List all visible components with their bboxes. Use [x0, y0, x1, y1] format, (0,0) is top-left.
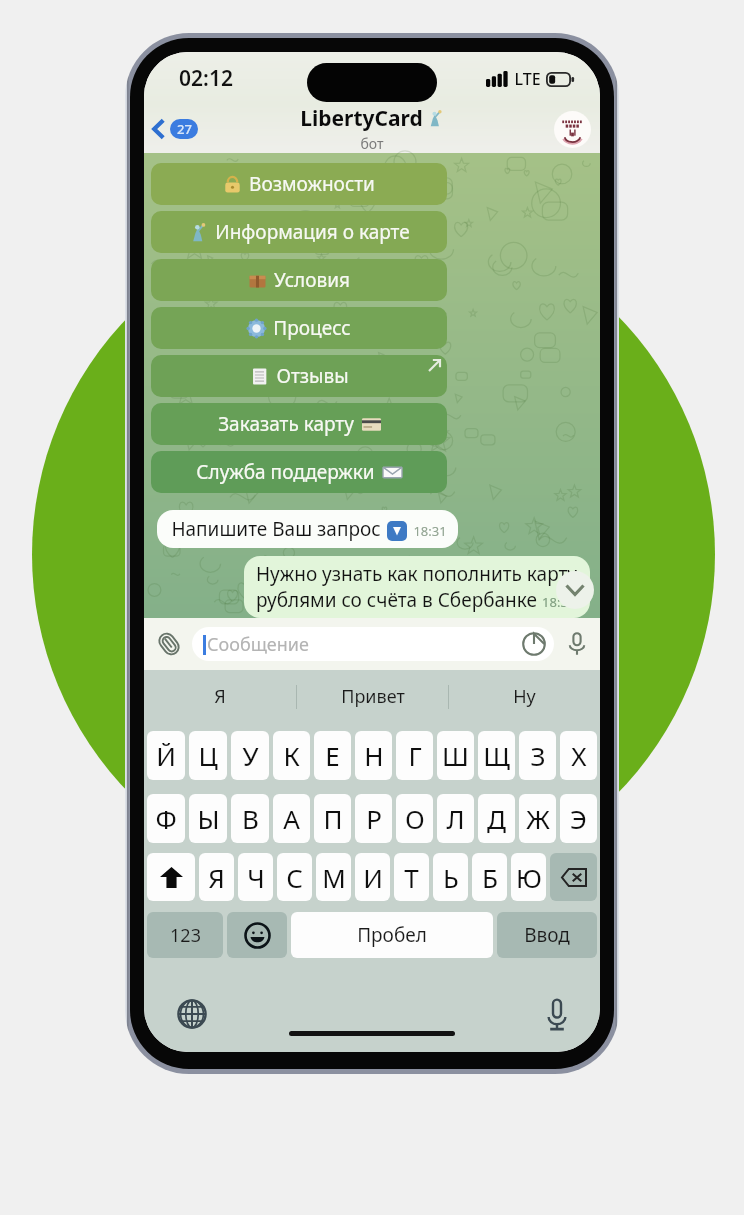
staticText: Ц	[198, 738, 218, 773]
button[interactable]: С	[277, 853, 312, 901]
staticText: В	[242, 801, 259, 836]
button[interactable]: Т	[394, 853, 429, 901]
staticText: Служба поддержки	[196, 459, 375, 485]
staticText: Л	[446, 801, 465, 836]
button[interactable]: П	[314, 794, 351, 843]
staticText: Информация о карте	[215, 219, 410, 245]
button[interactable]: Ы	[189, 794, 227, 843]
button[interactable]: Ю	[511, 853, 546, 901]
button[interactable]: Ш	[437, 731, 474, 780]
button[interactable]: Я	[199, 853, 234, 901]
staticText: У	[242, 738, 259, 773]
button[interactable]: Shift	[147, 853, 195, 901]
button[interactable]: Ну	[449, 670, 600, 723]
staticText: Процесс	[273, 315, 351, 341]
staticText: И	[363, 860, 383, 895]
button[interactable]: О	[396, 794, 433, 843]
staticText: С	[286, 860, 303, 895]
staticText: Заказать карту	[218, 411, 354, 437]
staticText: П	[323, 801, 343, 836]
button[interactable]: К	[273, 731, 310, 780]
staticText: рублями со счёта в Сбербанке	[256, 587, 537, 613]
staticText: Пробел	[357, 922, 427, 948]
staticText: Т	[404, 860, 419, 895]
staticText: Х	[571, 738, 587, 773]
button[interactable]: Record voice message	[565, 632, 589, 656]
button[interactable]: Л	[437, 794, 474, 843]
button[interactable]: Stickers	[522, 632, 546, 656]
staticText: З	[530, 738, 546, 773]
button[interactable]: Ж	[519, 794, 556, 843]
button[interactable]: Щ	[478, 731, 515, 780]
staticText: Отзывы	[276, 363, 349, 389]
button[interactable]: Ф	[147, 794, 185, 843]
button[interactable]: А	[273, 794, 310, 843]
button[interactable]: Пробел	[291, 912, 493, 958]
staticText: Э	[570, 801, 587, 836]
staticText: Щ	[483, 738, 510, 773]
button[interactable]: Ч	[238, 853, 273, 901]
staticText: 02:12	[179, 64, 233, 93]
button[interactable]: Д	[478, 794, 515, 843]
staticText: Ч	[247, 860, 265, 895]
button[interactable]: В	[231, 794, 269, 843]
button[interactable]: Ввод	[497, 912, 597, 958]
button[interactable]: Й	[147, 731, 185, 780]
button[interactable]: Отзывы	[151, 355, 447, 397]
other: Back	[152, 118, 165, 140]
button[interactable]: Switch keyboard	[177, 999, 207, 1029]
staticText: Ф	[155, 801, 177, 836]
button[interactable]: Scroll to bottom	[556, 571, 594, 609]
button[interactable]: Ь	[433, 853, 468, 901]
button[interactable]: З	[519, 731, 556, 780]
button[interactable]: Backspace	[550, 853, 597, 901]
button[interactable]: М	[316, 853, 351, 901]
button[interactable]: Х	[560, 731, 597, 780]
staticText: Р	[366, 801, 382, 836]
button[interactable]: Е	[314, 731, 351, 780]
staticText: Ну	[513, 684, 536, 709]
staticText: А	[283, 801, 300, 836]
staticText: Е	[325, 738, 340, 773]
button[interactable]: Сообщение	[192, 627, 554, 661]
staticText: Д	[487, 801, 506, 836]
button[interactable]: У	[231, 731, 269, 780]
button[interactable]: Б	[472, 853, 507, 901]
staticText: Ж	[526, 801, 550, 836]
staticText: Напишите Ваш запрос	[171, 516, 381, 542]
staticText: LTE	[514, 68, 541, 90]
staticText: Б	[482, 860, 498, 895]
staticText: Привет	[341, 684, 405, 709]
button[interactable]: Возможности	[151, 163, 447, 205]
button[interactable]: 123	[147, 912, 223, 958]
button[interactable]: Я	[144, 670, 296, 723]
button[interactable]: И	[355, 853, 390, 901]
button[interactable]: Ц	[189, 731, 227, 780]
staticText: О	[405, 801, 425, 836]
staticText: LibertyCard	[300, 104, 423, 133]
button[interactable]: Back	[148, 113, 202, 145]
button[interactable]: Напишите Ваш запрос	[157, 510, 458, 548]
button[interactable]: Н	[355, 731, 392, 780]
staticText: Ь	[443, 860, 459, 895]
button[interactable]: Р	[355, 794, 392, 843]
button[interactable]: Chat info	[554, 111, 591, 148]
button[interactable]: Emoji keyboard	[227, 912, 287, 958]
button[interactable]: Процесс	[151, 307, 447, 349]
button[interactable]: Э	[560, 794, 597, 843]
button[interactable]: Условия	[151, 259, 447, 301]
button[interactable]: Dictation	[547, 999, 567, 1031]
staticText: Г	[408, 738, 422, 773]
button[interactable]: Г	[396, 731, 433, 780]
staticText: 27	[177, 120, 192, 138]
staticText: Сообщение	[207, 632, 309, 657]
button[interactable]: Информация о карте	[151, 211, 447, 253]
button[interactable]: Нужно узнать как пополнить карту	[244, 556, 590, 618]
staticText: бот	[360, 134, 384, 152]
button[interactable]: Служба поддержки	[151, 451, 447, 493]
button[interactable]: Заказать карту	[151, 403, 447, 445]
staticText: 18:3	[542, 593, 568, 611]
staticText: Условия	[274, 267, 350, 293]
button[interactable]: Attach file	[155, 630, 183, 658]
button[interactable]: Привет	[297, 670, 448, 723]
